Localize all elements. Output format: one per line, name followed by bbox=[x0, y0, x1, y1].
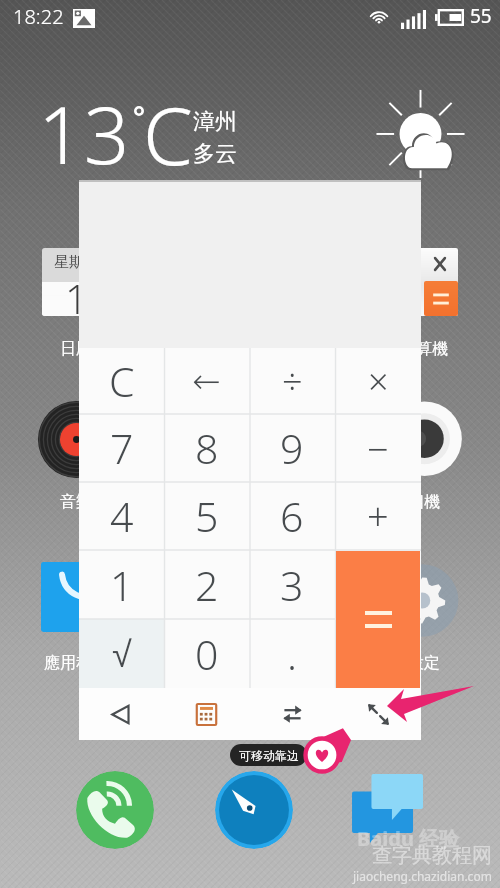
button[interactable]: 1 bbox=[79, 550, 164, 619]
button[interactable]: 4 bbox=[79, 482, 164, 550]
staticText: 5 bbox=[195, 488, 219, 544]
staticText: . bbox=[287, 626, 298, 682]
button[interactable]: Messages bbox=[350, 770, 428, 848]
staticText: C bbox=[143, 79, 193, 188]
staticText: 音樂 bbox=[17, 492, 135, 512]
button[interactable]: 8 bbox=[164, 414, 249, 482]
button[interactable]: + bbox=[335, 482, 421, 550]
staticText: 設定 bbox=[365, 653, 483, 673]
staticText: 6 bbox=[280, 488, 304, 544]
button[interactable]: × bbox=[335, 348, 421, 414]
button[interactable]: Browser bbox=[215, 771, 293, 849]
button[interactable] bbox=[335, 550, 421, 619]
staticText: 9 bbox=[280, 420, 304, 476]
button[interactable]: 2 bbox=[164, 550, 249, 619]
staticText: 55 bbox=[470, 3, 492, 29]
staticText: ← bbox=[192, 361, 221, 401]
staticText: 多云 bbox=[193, 140, 237, 168]
staticText: 1 bbox=[65, 271, 88, 325]
staticText: 漳州 bbox=[193, 108, 237, 136]
button[interactable]: 應用程式 bbox=[17, 562, 135, 674]
button[interactable]: 星期一 bbox=[17, 248, 135, 360]
staticText: jiaocheng.chazidian.com bbox=[353, 868, 492, 884]
button[interactable]: ← bbox=[164, 348, 249, 414]
staticText: × bbox=[368, 357, 389, 406]
staticText: ÷ bbox=[282, 357, 303, 406]
button[interactable]: Expand bbox=[335, 688, 421, 740]
button[interactable]: 相機 bbox=[365, 401, 483, 513]
staticText: + bbox=[367, 490, 389, 542]
button[interactable]: ÷ bbox=[249, 348, 335, 414]
button[interactable]: Equals bbox=[336, 551, 420, 688]
staticText: 8 bbox=[195, 420, 219, 476]
staticText: 7 bbox=[110, 420, 134, 476]
button[interactable] bbox=[335, 619, 421, 688]
button[interactable]: 7 bbox=[79, 414, 164, 482]
button[interactable]: . bbox=[249, 619, 335, 688]
button[interactable]: Unit convert bbox=[249, 688, 335, 740]
button[interactable]: √ bbox=[79, 619, 164, 688]
button[interactable]: 6 bbox=[249, 482, 335, 550]
staticText: 星期一 bbox=[54, 253, 99, 272]
button[interactable]: 計算機 bbox=[365, 248, 483, 360]
staticText: Baidu 经验 bbox=[357, 825, 460, 852]
staticText: 4 bbox=[110, 488, 134, 544]
staticText: 3 bbox=[280, 557, 304, 613]
staticText: 1 bbox=[110, 557, 134, 613]
button[interactable]: Phone bbox=[76, 771, 154, 849]
staticText: 相機 bbox=[365, 492, 483, 512]
staticText: 18:22 bbox=[13, 3, 64, 30]
button[interactable]: 音樂 bbox=[17, 401, 135, 513]
staticText: 可移动靠边 bbox=[239, 748, 299, 763]
staticText: − bbox=[367, 422, 389, 474]
button[interactable]: 0 bbox=[164, 619, 249, 688]
staticText: C bbox=[109, 353, 135, 409]
staticText: 2 bbox=[195, 557, 219, 613]
button[interactable]: 5 bbox=[164, 482, 249, 550]
button[interactable]: − bbox=[335, 414, 421, 482]
staticText: 應用程式 bbox=[17, 653, 135, 673]
staticText: √ bbox=[112, 634, 132, 674]
button[interactable]: Back bbox=[79, 688, 164, 740]
button[interactable]: 3 bbox=[249, 550, 335, 619]
staticText: 13 bbox=[38, 78, 130, 187]
button[interactable]: 9 bbox=[249, 414, 335, 482]
button[interactable]: 設定 bbox=[365, 562, 483, 674]
staticText: 計算機 bbox=[365, 339, 483, 359]
button[interactable]: C bbox=[79, 348, 164, 414]
staticText: 查字典教程网 bbox=[372, 843, 492, 868]
button[interactable]: Calculator bbox=[164, 688, 249, 740]
staticText: 日曆 bbox=[17, 339, 135, 359]
staticText: 0 bbox=[195, 626, 219, 682]
